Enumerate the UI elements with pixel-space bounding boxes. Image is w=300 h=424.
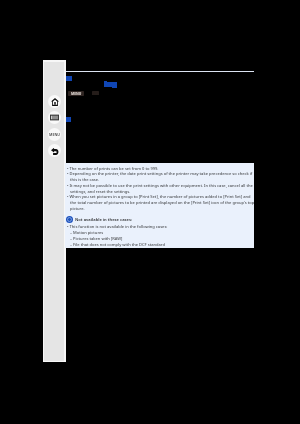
staticText: settings, and reset the settings.: [70, 189, 131, 195]
staticText: the total number of pictures to be print…: [70, 200, 255, 206]
staticText: – Pictures taken with [RAW]: [70, 236, 123, 242]
staticText: this is the case.: [70, 177, 100, 183]
button[interactable]: Display: [48, 111, 61, 124]
button[interactable]: Menu: [48, 128, 61, 141]
staticText: Not available in these cases:: [75, 217, 133, 223]
staticText: – Motion pictures: [70, 230, 104, 236]
staticText: picture.: [70, 206, 85, 212]
button[interactable]: Back: [48, 144, 61, 157]
button[interactable]: Home: [48, 95, 61, 108]
staticText: MENU: [71, 91, 82, 96]
staticText: MENU: [49, 132, 61, 137]
button[interactable]: MENU key: [68, 91, 84, 96]
staticText: • When you set pictures in a group to [P…: [67, 194, 251, 200]
staticText: • This function is not available in the …: [67, 224, 168, 230]
staticText: – File that does not comply with the DCF…: [70, 242, 165, 248]
staticText: • Depending on the printer, the date pri…: [67, 171, 253, 177]
staticText: • The number of prints can be set from 0…: [67, 166, 159, 172]
staticText: • It may not be possible to use the prin…: [67, 183, 253, 189]
